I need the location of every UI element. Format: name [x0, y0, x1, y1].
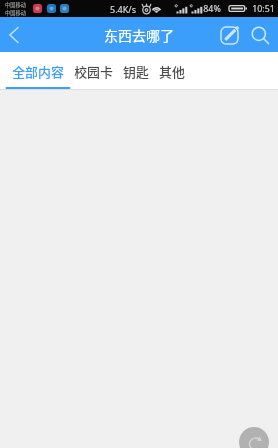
staticText: 10:51 — [252, 3, 275, 15]
button[interactable]: 校园卡 — [69, 52, 118, 87]
button[interactable]: 钥匙 — [118, 52, 154, 87]
staticText: 其他 — [159, 62, 185, 81]
button[interactable]: Compose — [215, 18, 243, 52]
staticText: 5.4K/s — [110, 3, 136, 15]
button[interactable]: 其他 — [154, 52, 190, 87]
staticText: 84% — [203, 3, 221, 15]
button[interactable]: Search — [246, 18, 274, 52]
staticText: 校园卡 — [74, 62, 113, 81]
button[interactable]: Refresh — [239, 427, 269, 448]
button[interactable]: 全部内容 — [7, 52, 69, 89]
staticText: 中国移动 — [5, 1, 26, 9]
staticText: 东西去哪了 — [104, 25, 174, 45]
button[interactable]: Back — [0, 18, 28, 52]
staticText: 全部内容 — [12, 62, 64, 81]
staticText: 钥匙 — [123, 62, 149, 81]
staticText: 中国移动 — [5, 9, 26, 17]
